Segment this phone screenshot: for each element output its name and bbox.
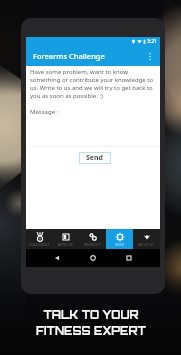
staticText: ARTICLES (58, 243, 73, 247)
button[interactable]: Recents (124, 253, 134, 263)
button[interactable]: CHALLENGES (26, 229, 52, 249)
button[interactable]: WORKOUT (79, 229, 106, 249)
staticText: FITNESS EXPERT (36, 324, 146, 338)
button[interactable]: Back (52, 253, 62, 263)
staticText: Message : (30, 108, 59, 116)
staticText: WORKOUT (84, 243, 101, 247)
staticText: CHALLENGES (29, 243, 50, 247)
button[interactable]: ARTICLES (52, 229, 79, 249)
staticText: 3:21 (147, 38, 157, 45)
staticText: Have some problem, want to know somethin… (30, 68, 159, 100)
button[interactable]: ABOUT US (133, 229, 160, 249)
button[interactable]: Home (88, 253, 98, 263)
staticText: Forearms Challenge (33, 51, 105, 61)
button[interactable]: More options (143, 49, 157, 63)
staticText: TALK TO YOUR (43, 308, 139, 322)
staticText: MORE (115, 243, 125, 247)
button[interactable]: MORE (106, 229, 133, 249)
staticText: ABOUT US (138, 243, 155, 247)
staticText: Send (86, 153, 104, 163)
button[interactable]: Send (79, 152, 111, 164)
